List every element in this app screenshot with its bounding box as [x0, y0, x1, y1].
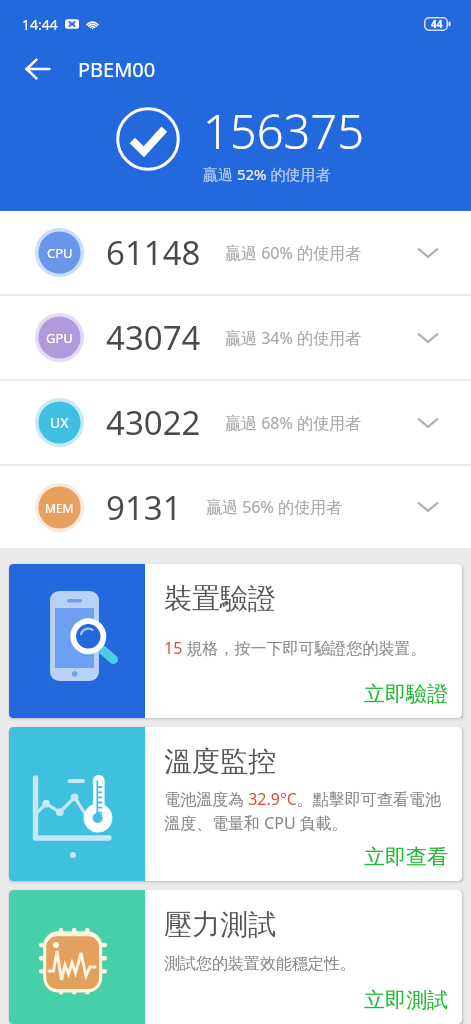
button[interactable]: MEM	[0, 466, 471, 548]
staticText: 14:44	[22, 15, 58, 34]
button[interactable]: UX	[0, 381, 471, 464]
staticText: CPU	[47, 244, 73, 262]
button[interactable]: 立即查看	[364, 844, 448, 870]
staticText: 電池溫度為 32.9°C。點擊即可查看電池溫度、電量和 CPU 負載。	[164, 788, 448, 834]
button[interactable]: GPU	[0, 296, 471, 379]
staticText: 測試您的裝置效能穩定性。	[164, 954, 356, 974]
staticText: 贏過 34% 的使用者	[225, 327, 361, 349]
staticText: 43074	[106, 315, 201, 360]
button[interactable]: 立即測試	[364, 987, 448, 1013]
button[interactable]: CPU	[0, 211, 471, 294]
staticText: 壓力測試	[164, 907, 276, 942]
staticText: UX	[50, 413, 69, 432]
staticText: 贏過 60% 的使用者	[225, 242, 361, 264]
staticText: 61148	[106, 230, 201, 275]
staticText: 贏過 68% 的使用者	[225, 412, 361, 434]
staticText: 9131	[106, 485, 182, 530]
staticText: 溫度監控	[164, 744, 276, 779]
staticText: 贏過 52% 的使用者	[203, 164, 331, 184]
staticText: PBEM00	[78, 56, 156, 83]
staticText: 43022	[106, 400, 201, 445]
button[interactable]: Back	[17, 48, 59, 90]
staticText: 44	[431, 17, 443, 31]
button[interactable]: Expand	[406, 485, 450, 529]
button[interactable]: 裝置驗證	[9, 564, 462, 718]
staticText: 裝置驗證	[164, 581, 276, 616]
button[interactable]: Expand	[406, 401, 450, 445]
staticText: 贏過 56% 的使用者	[206, 496, 342, 518]
staticText: 15 規格，按一下即可驗證您的裝置。	[164, 637, 427, 659]
button[interactable]: 溫度監控	[9, 727, 462, 881]
button[interactable]: Expand	[406, 231, 450, 275]
staticText: 156375	[203, 99, 365, 163]
staticText: MEM	[45, 500, 74, 516]
button[interactable]: Expand	[406, 316, 450, 360]
button[interactable]: 立即驗證	[364, 681, 448, 707]
staticText: GPU	[46, 329, 73, 347]
button[interactable]: 壓力測試	[9, 890, 462, 1024]
